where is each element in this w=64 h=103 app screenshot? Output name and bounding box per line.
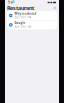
button[interactable]: Why is ordered xyxy=(7,11,57,20)
button[interactable]: More xyxy=(54,7,59,9)
staticText: Sub title text xyxy=(14,25,31,28)
staticText: Restaurant xyxy=(7,4,34,12)
button[interactable]: Google xyxy=(7,20,57,29)
staticText: Sub title text xyxy=(14,15,31,19)
staticText: Google xyxy=(14,21,25,25)
staticText: Why is ordered xyxy=(14,12,36,15)
staticText: 9:41 xyxy=(8,1,15,4)
